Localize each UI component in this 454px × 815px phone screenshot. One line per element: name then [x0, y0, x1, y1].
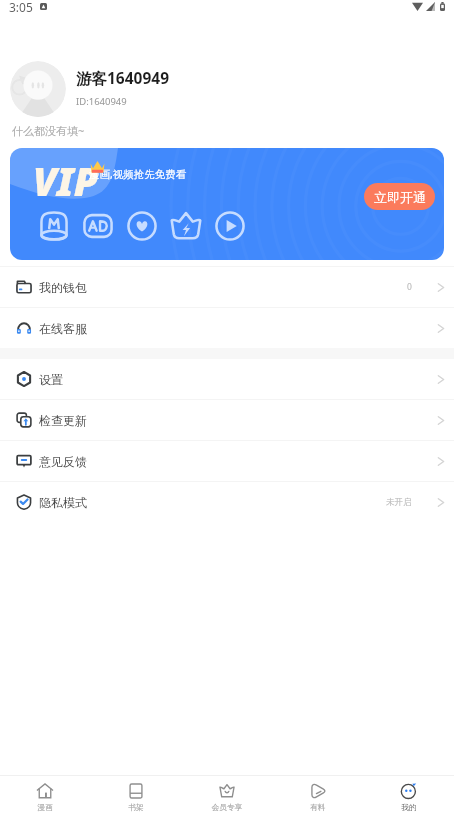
staticText: 漫画: [37, 802, 53, 812]
staticText: 游客1640949: [76, 67, 170, 88]
button[interactable]: 有料: [272, 776, 363, 815]
button[interactable]: Favorites: [126, 210, 158, 242]
staticText: 未开启: [386, 497, 412, 508]
staticText: 书架: [128, 802, 144, 812]
staticText: 会员专享: [211, 802, 243, 812]
button[interactable]: 立即开通: [364, 183, 435, 210]
staticText: 漫画,视频抢先免费看: [89, 167, 187, 181]
button[interactable]: Videos: [214, 210, 246, 242]
button[interactable]: 意见反馈: [0, 441, 454, 481]
button[interactable]: 会员专享: [181, 776, 272, 815]
button[interactable]: 我的钱包: [0, 267, 454, 307]
staticText: 什么都没有填~: [12, 123, 85, 138]
button[interactable]: 在线客服: [0, 308, 454, 348]
staticText: 设置: [39, 372, 63, 387]
button[interactable]: 我的: [363, 776, 454, 815]
staticText: 有料: [310, 802, 326, 812]
button[interactable]: Comics: [38, 210, 70, 242]
button[interactable]: Privileges: [170, 210, 202, 242]
staticText: 隐私模式: [39, 495, 87, 510]
button[interactable]: Avatar: [10, 61, 66, 117]
button[interactable]: 设置: [0, 359, 454, 399]
button[interactable]: 检查更新: [0, 400, 454, 440]
staticText: 我的: [401, 802, 417, 812]
staticText: 在线客服: [39, 321, 87, 336]
staticText: 我的钱包: [39, 280, 87, 295]
staticText: 立即开通: [374, 189, 426, 205]
staticText: 0: [407, 281, 412, 293]
button[interactable]: 隐私模式: [0, 482, 454, 522]
staticText: VIP: [33, 154, 98, 207]
button[interactable]: No ads: [82, 210, 114, 242]
button[interactable]: 书架: [90, 776, 181, 815]
staticText: 检查更新: [39, 413, 87, 428]
staticText: 意见反馈: [39, 454, 87, 469]
button[interactable]: 漫画: [0, 776, 90, 815]
staticText: ID:1640949: [76, 95, 127, 108]
staticText: 3:05: [9, 0, 33, 15]
button[interactable]: VIP: [10, 148, 444, 260]
